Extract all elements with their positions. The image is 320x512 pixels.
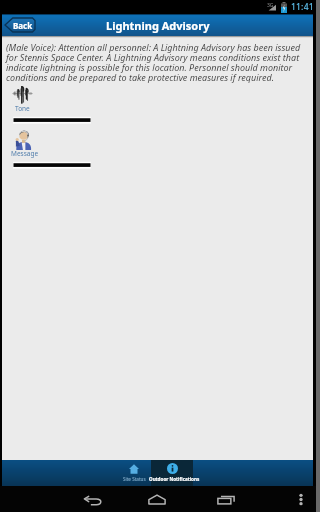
staticText: Site Status (123, 476, 146, 482)
staticText: 3G (267, 2, 274, 9)
staticText: Lightning Advisory (106, 18, 210, 33)
button[interactable]: Play tone (11, 86, 34, 111)
button[interactable]: Site Status (117, 460, 151, 486)
staticText: Back (13, 20, 33, 31)
staticText: Tone (15, 104, 30, 113)
button[interactable]: More options (295, 491, 307, 507)
button[interactable]: Back (5, 18, 35, 32)
staticText: (Male Voice): Attention all personnel: A… (6, 41, 309, 83)
button[interactable]: Tone progress (13, 116, 91, 124)
staticText: Outdoor Notifications (149, 476, 200, 482)
button[interactable]: Play message (10, 128, 36, 156)
button[interactable]: Recents (216, 492, 236, 506)
staticText: 11:41 (291, 1, 314, 13)
button[interactable]: Back (83, 493, 103, 507)
button[interactable]: Home (147, 492, 167, 506)
button[interactable]: Message progress (13, 161, 91, 169)
button[interactable] (151, 460, 193, 486)
staticText: Message (11, 149, 39, 158)
